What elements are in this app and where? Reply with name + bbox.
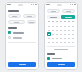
button[interactable] [63,24,67,28]
button[interactable]: Confirm [47,62,75,67]
button[interactable] [62,9,75,13]
button[interactable] [71,40,75,44]
button[interactable] [8,20,25,24]
button[interactable] [63,32,67,36]
button[interactable] [8,36,36,39]
button[interactable] [59,28,63,32]
button[interactable] [23,14,36,18]
button[interactable]: Continue [8,62,36,67]
button[interactable] [67,28,71,32]
button[interactable] [47,24,51,28]
button[interactable] [47,15,60,19]
button[interactable] [63,28,67,32]
button[interactable] [27,20,36,24]
button[interactable] [67,36,71,40]
button[interactable] [59,32,63,36]
button[interactable] [59,36,63,40]
button[interactable] [47,40,51,44]
button[interactable] [67,24,71,28]
button[interactable] [47,28,51,32]
button[interactable] [61,15,75,19]
button[interactable] [51,32,55,36]
button[interactable] [59,40,63,44]
button[interactable] [71,24,75,28]
button[interactable] [51,28,55,32]
button[interactable] [71,28,75,32]
button[interactable] [71,32,75,36]
button[interactable] [67,32,71,36]
button[interactable] [8,31,36,34]
button[interactable] [8,14,21,18]
button[interactable] [55,28,59,32]
button[interactable] [51,36,55,40]
button[interactable] [47,9,60,13]
button[interactable] [55,24,59,28]
button[interactable] [55,36,59,40]
button[interactable] [47,32,51,36]
button[interactable] [47,57,75,60]
button[interactable] [59,24,63,28]
button[interactable] [71,36,75,40]
button[interactable] [47,36,51,40]
button[interactable] [51,24,55,28]
button[interactable] [63,36,67,40]
button[interactable] [55,40,59,44]
button[interactable] [67,40,71,44]
button[interactable] [51,40,55,44]
button[interactable] [55,32,59,36]
button[interactable] [63,40,67,44]
